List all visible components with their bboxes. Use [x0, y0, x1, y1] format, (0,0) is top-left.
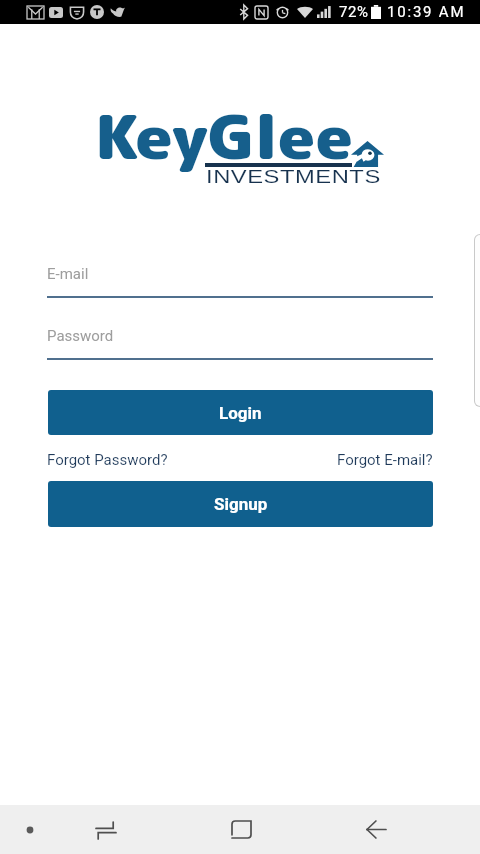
staticText: KeyGlee — [95, 94, 354, 178]
staticText: Password — [47, 327, 114, 345]
button[interactable]: Forgot E-mail? — [337, 448, 433, 472]
staticText: Login — [219, 403, 262, 423]
button[interactable]: Password — [47, 318, 433, 360]
button[interactable]: Navigation hint — [10, 810, 50, 850]
button[interactable]: Recent apps — [82, 805, 130, 854]
button[interactable]: Login — [48, 390, 433, 435]
staticText: INVESTMENTS — [206, 167, 382, 187]
button[interactable]: Back — [352, 805, 400, 854]
button[interactable]: Signup — [48, 481, 433, 527]
staticText: 72% — [339, 3, 369, 21]
staticText: 10:39 AM — [387, 3, 466, 21]
staticText: Signup — [214, 494, 268, 514]
button[interactable]: Home — [217, 805, 265, 854]
button[interactable]: Forgot Password? — [47, 448, 168, 472]
staticText: E-mail — [47, 265, 89, 283]
button[interactable]: E-mail — [47, 256, 433, 298]
